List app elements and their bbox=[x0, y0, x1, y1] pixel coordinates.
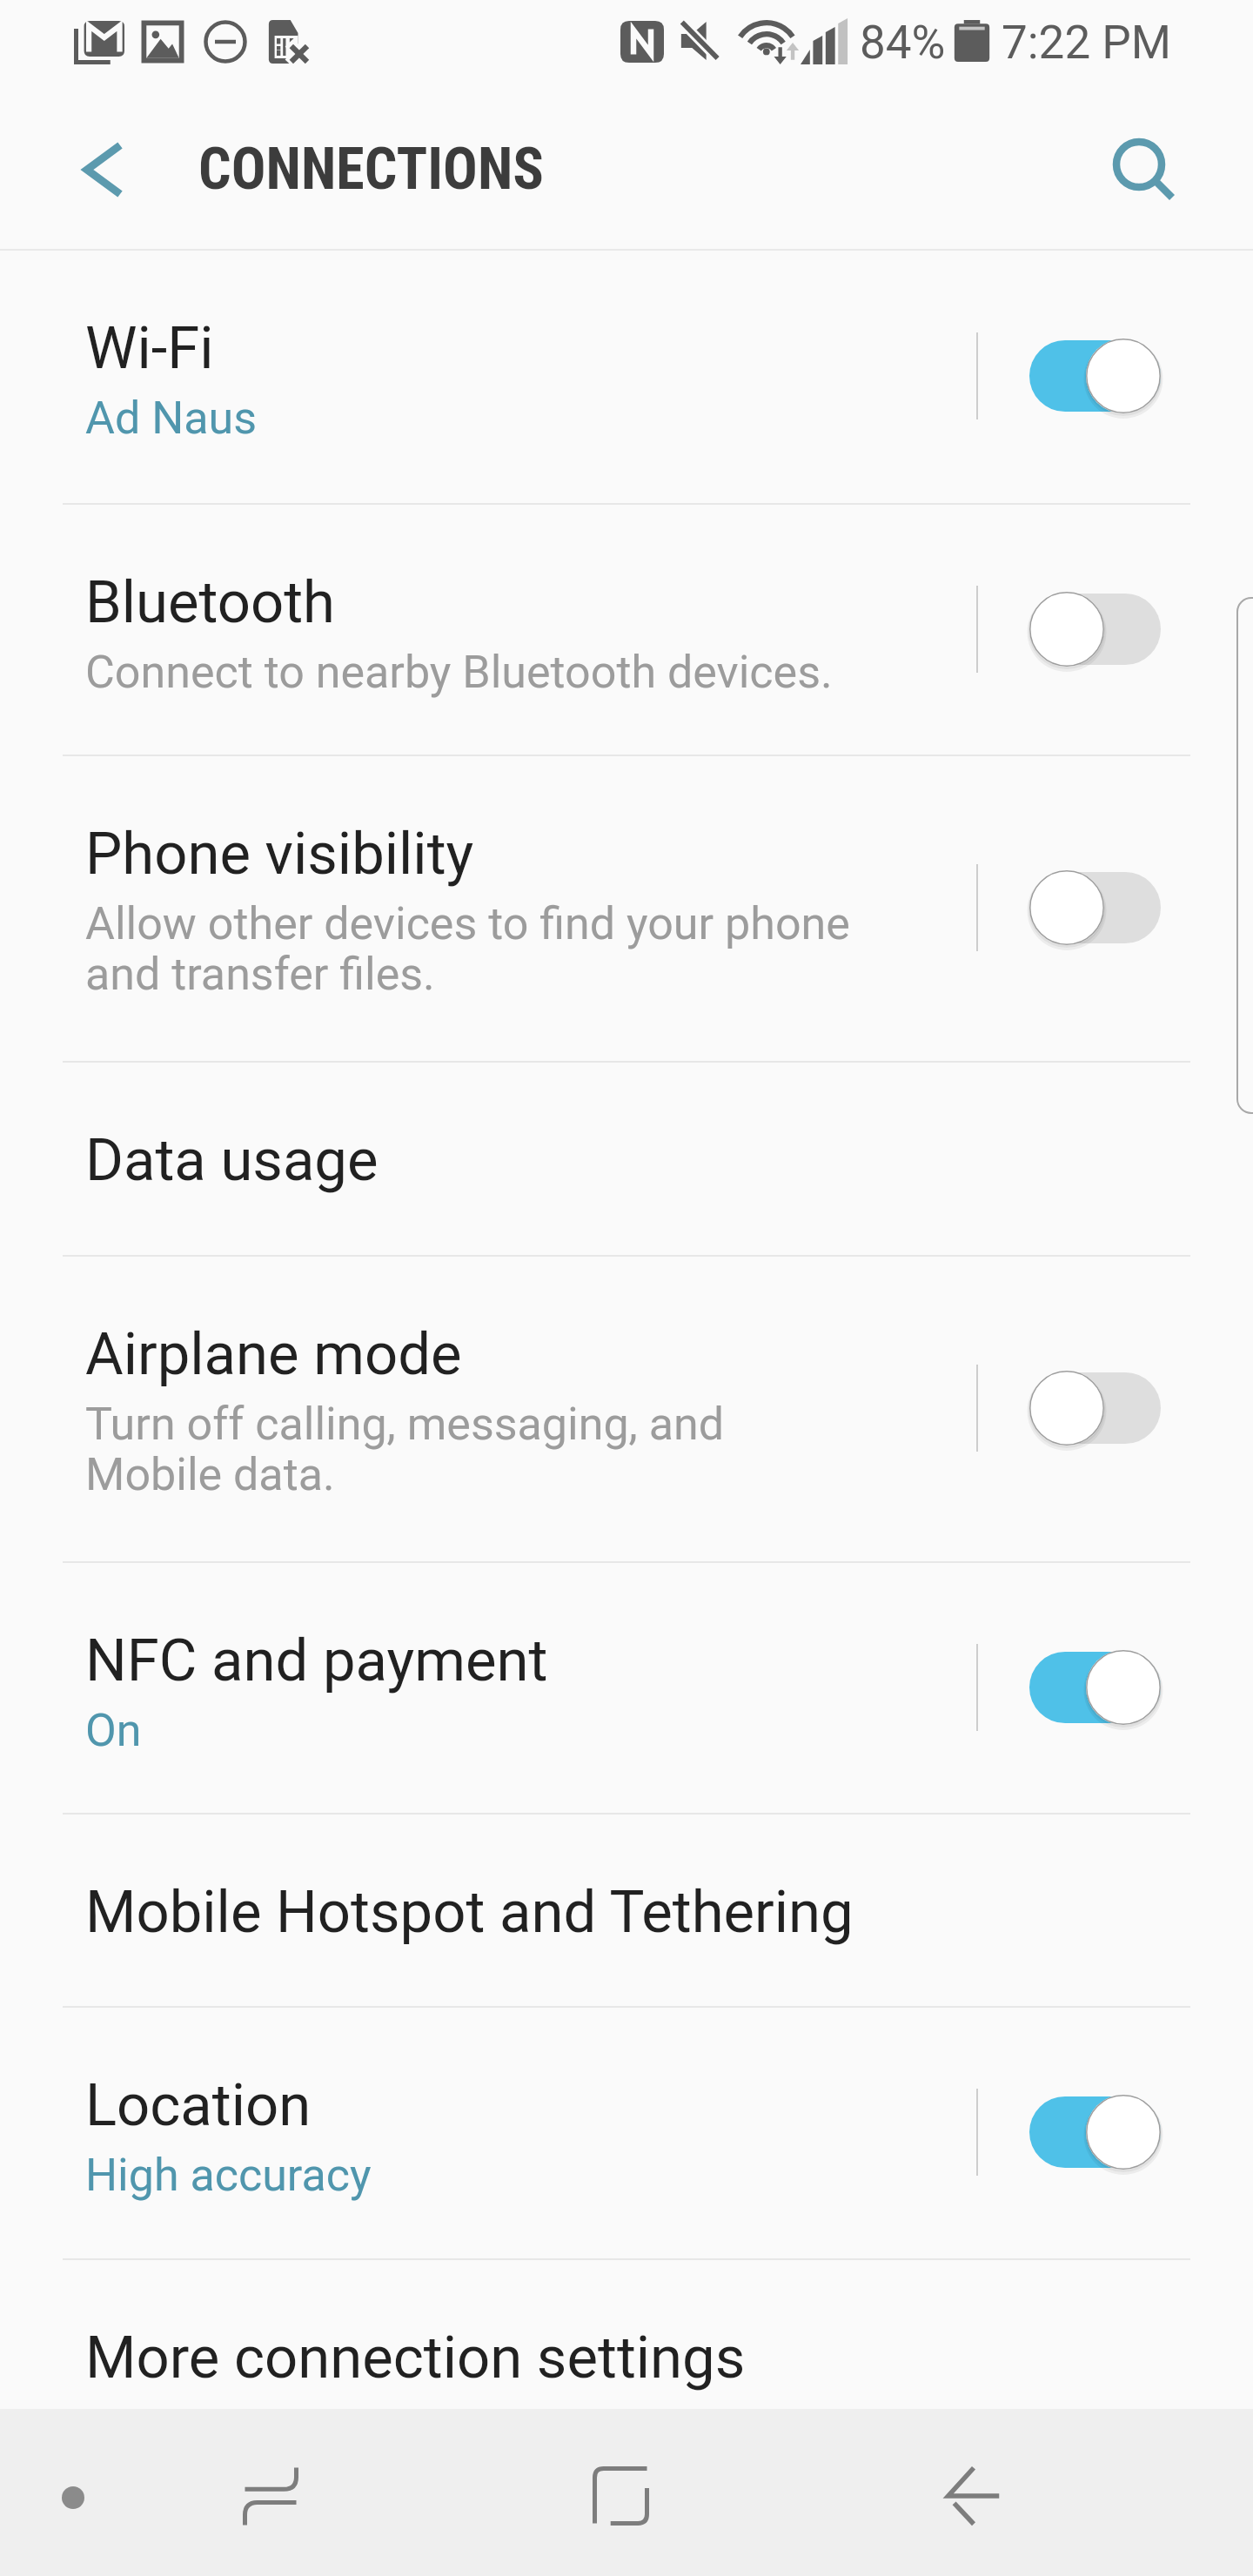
staticText: Bluetooth bbox=[85, 568, 336, 637]
staticText: Airplane mode bbox=[85, 1320, 462, 1389]
button[interactable]: Recent apps bbox=[201, 2426, 340, 2566]
staticText: Turn off calling, messaging, and Mobile … bbox=[85, 1398, 725, 1501]
staticText: Wi-Fi bbox=[85, 314, 214, 383]
button[interactable]: Airplane mode bbox=[0, 1255, 1253, 1561]
button[interactable]: Navigate up bbox=[48, 114, 159, 225]
staticText: CONNECTIONS bbox=[198, 136, 544, 203]
button[interactable]: Phone visibility bbox=[0, 755, 1253, 1061]
staticText: Data usage bbox=[85, 1126, 379, 1195]
staticText: Allow other devices to find your phone a… bbox=[85, 897, 850, 1001]
button[interactable]: Search bbox=[1089, 116, 1200, 227]
button[interactable]: Bluetooth bbox=[0, 503, 1253, 755]
button[interactable]: NFC and payment bbox=[0, 1561, 1253, 1813]
staticText: High accuracy bbox=[85, 2149, 372, 2202]
staticText: 84% bbox=[860, 16, 946, 70]
staticText: 7:22 PM bbox=[1002, 16, 1172, 70]
button[interactable]: Back bbox=[904, 2426, 1043, 2566]
staticText: Ad Naus bbox=[85, 392, 258, 445]
button[interactable]: Data usage bbox=[0, 1061, 1253, 1255]
staticText: Connect to nearby Bluetooth devices. bbox=[85, 646, 833, 699]
staticText: Mobile Hotspot and Tethering bbox=[85, 1878, 854, 1947]
staticText: NFC and payment bbox=[85, 1627, 548, 1695]
button[interactable]: More connection settings bbox=[0, 2258, 1253, 2409]
button[interactable]: Wi-Fi bbox=[0, 249, 1253, 503]
staticText: Location bbox=[85, 2071, 312, 2140]
button[interactable]: Home bbox=[551, 2426, 690, 2566]
staticText: Phone visibility bbox=[85, 820, 474, 889]
button[interactable]: Location bbox=[0, 2006, 1253, 2258]
button[interactable]: Mobile Hotspot and Tethering bbox=[0, 1813, 1253, 2006]
staticText: More connection settings bbox=[85, 2324, 746, 2392]
staticText: On bbox=[85, 1704, 142, 1757]
